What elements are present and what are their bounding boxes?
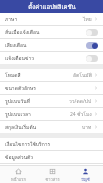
button[interactable]: รูปแบบเวลา [0, 108, 103, 120]
button[interactable]: ข่าวสาร [37, 166, 67, 183]
staticText: อัตโนมัติ [73, 71, 92, 79]
other: Open [94, 112, 98, 116]
staticText: ขนาดตัวอักษร [5, 84, 36, 92]
button[interactable]: เงื่อนไขการใช้บริการ [0, 138, 103, 150]
other: Open [94, 73, 98, 77]
button[interactable]: ขนาดตัวอักษร [0, 82, 103, 94]
button[interactable]: โหมดสี [0, 69, 103, 81]
staticText: บัญชี [81, 176, 90, 182]
staticText: แจ้งเตือนข่าว [5, 54, 35, 62]
button[interactable]: บัญชี [70, 166, 100, 183]
other: Open [94, 125, 98, 129]
staticText: ข่าวสาร [45, 176, 60, 182]
staticText: วว/ดด/ปป [69, 97, 92, 105]
staticText: ข้อมูลส่วนตัว [5, 153, 34, 161]
button[interactable]: เสียงเตือน [0, 39, 103, 51]
button[interactable]: On [86, 42, 98, 49]
staticText: เงื่อนไขการใช้บริการ [5, 140, 51, 148]
staticText: 24 ชั่วโมง [70, 110, 92, 118]
other: Open [94, 99, 98, 103]
button[interactable]: สั่นเมื่อแจ้งเตือน [0, 26, 103, 38]
staticText: เสียงเตือน [5, 41, 27, 49]
button[interactable]: Off [86, 55, 98, 62]
staticText: สกุลเงินเริ่มต้น [5, 123, 37, 131]
staticText: หน้าแรก [11, 176, 26, 182]
staticText: โหมดสี [5, 71, 21, 79]
button[interactable]: Off [86, 29, 98, 36]
staticText: รูปแบบวันที่ [5, 97, 30, 105]
other: Open [94, 86, 98, 90]
staticText: ไทย [83, 15, 92, 23]
button[interactable]: ภาษา [0, 13, 103, 25]
button[interactable]: ข้อมูลส่วนตัว [0, 151, 103, 163]
staticText: สั่นเมื่อแจ้งเตือน [5, 28, 40, 36]
staticText: รูปแบบเวลา [5, 110, 31, 118]
button[interactable]: หน้าแรก [3, 166, 33, 183]
button[interactable]: รูปแบบวันที่ [0, 95, 103, 107]
other: Open [94, 17, 98, 21]
staticText: ตั้งค่าแอปพลิเคชัน [28, 2, 76, 12]
button[interactable]: สกุลเงินเริ่มต้น [0, 121, 103, 133]
staticText: บาท [82, 123, 92, 131]
button[interactable]: แจ้งเตือนข่าว [0, 52, 103, 64]
staticText: ภาษา [5, 15, 18, 23]
